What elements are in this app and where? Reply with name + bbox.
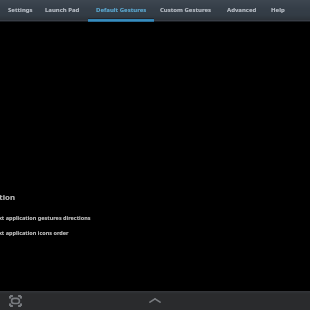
button[interactable]: Settings (2, 0, 39, 22)
staticText: Settings (8, 6, 33, 14)
button[interactable]: Custom Gestures (154, 0, 219, 22)
button[interactable]: Default Gestures (90, 0, 153, 22)
button[interactable]: Next application icons order (0, 226, 111, 240)
staticText: Next Application (0, 192, 16, 203)
staticText: Custom Gestures (160, 6, 212, 14)
staticText: Help (271, 6, 285, 14)
button[interactable]: Advanced (221, 0, 265, 22)
button[interactable]: Launch Pad (39, 0, 88, 22)
staticText: Launch Pad (45, 6, 80, 14)
button[interactable]: Fullscreen (2, 291, 28, 310)
button[interactable]: Help (265, 0, 292, 22)
staticText: Default Gestures (96, 6, 147, 14)
staticText: Next application icons order (0, 229, 69, 236)
button[interactable]: Show dock (140, 291, 170, 310)
staticText: Next application gestures directions (0, 214, 91, 221)
button[interactable]: Next application gestures directions (0, 211, 111, 225)
staticText: Advanced (227, 6, 257, 14)
